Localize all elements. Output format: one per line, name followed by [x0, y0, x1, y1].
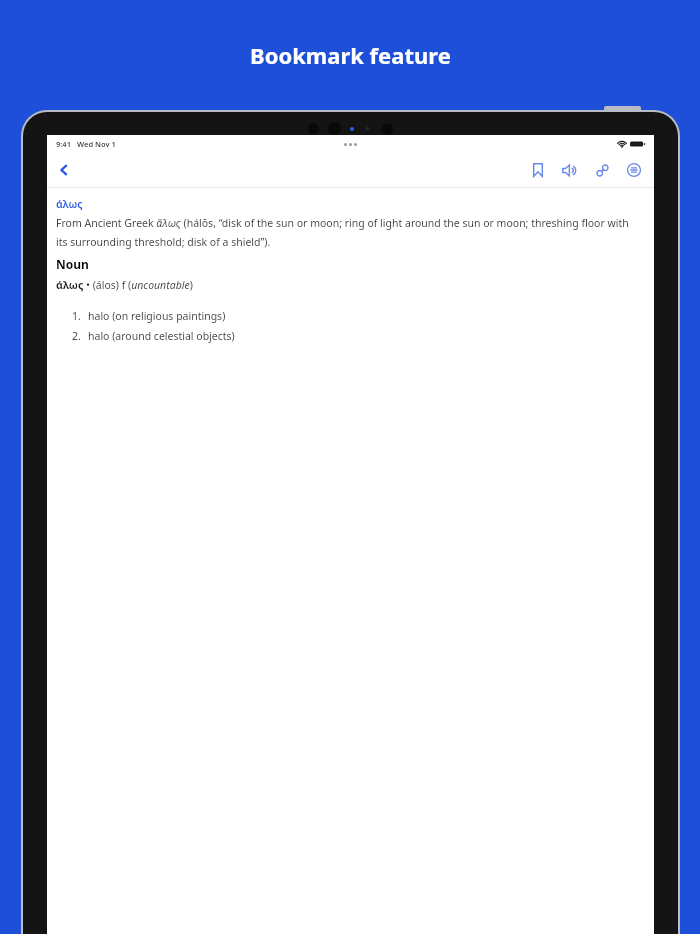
staticText: 2. — [72, 329, 81, 343]
button[interactable]: Read aloud — [558, 158, 582, 182]
staticText: From Ancient Greek ἅλως (hálōs, “disk of… — [56, 216, 640, 249]
button[interactable]: Copy link — [590, 158, 614, 182]
staticText: Wed Nov 1 — [77, 139, 116, 149]
staticText: halo (on religious paintings) — [88, 309, 226, 323]
staticText: 9:41 — [56, 139, 71, 149]
button[interactable]: Menu — [622, 158, 646, 182]
staticText: 1. — [72, 309, 81, 323]
staticText: halo (around celestial objects) — [88, 329, 235, 343]
staticText: Noun — [56, 256, 89, 272]
staticText: άλως • (álos) f (uncountable) — [56, 278, 193, 292]
staticText: άλως — [56, 197, 83, 211]
button[interactable]: Back — [51, 157, 77, 183]
button[interactable]: Bookmark — [526, 158, 550, 182]
staticText: Bookmark feature — [250, 40, 451, 70]
